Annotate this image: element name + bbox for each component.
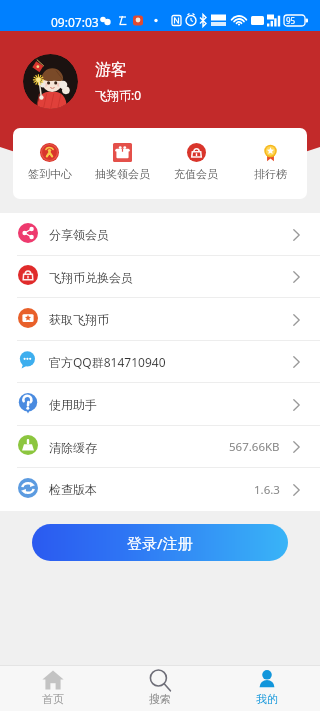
staticText: 1.6.3 [254,482,280,498]
staticText: 获取飞翔币 [49,312,109,327]
button[interactable]: 首页 [0,666,106,711]
button[interactable]: 签到中心 [13,128,86,199]
staticText: 清除缓存 [49,440,97,455]
button[interactable]: 抽奖领会员 [86,128,159,199]
button[interactable]: 飞翔币兑换会员 [0,256,320,298]
staticText: 09:07:03 [51,14,99,30]
button[interactable]: 检查版本 [0,468,320,511]
staticText: 官方QQ群814710940 [49,354,166,370]
button[interactable]: 我的 [213,666,320,711]
staticText: 游客 [95,60,127,80]
button[interactable]: 获取飞翔币 [0,298,320,341]
button[interactable]: 登录/注册 [32,524,288,561]
staticText: 抽奖领会员 [95,167,150,181]
staticText: 排行榜 [254,167,287,181]
staticText: 登录/注册 [127,533,193,553]
button[interactable]: 搜索 [106,666,213,711]
staticText: 充值会员 [174,167,218,181]
staticText: 95 [286,15,296,26]
button[interactable]: 使用助手 [0,383,320,426]
staticText: 飞翔币:0 [95,87,142,103]
button[interactable]: 清除缓存 [0,426,320,468]
staticText: 检查版本 [49,482,97,497]
staticText: 我的 [256,692,278,706]
staticText: 搜索 [149,692,171,706]
button[interactable]: 官方QQ群814710940 [0,341,320,383]
button[interactable]: 充值会员 [159,128,233,199]
staticText: 分享领会员 [49,227,109,242]
staticText: 567.66KB [229,439,280,455]
staticText: 使用助手 [49,397,97,412]
button[interactable]: 分享领会员 [0,213,320,256]
button[interactable]: 排行榜 [233,128,307,199]
staticText: 首页 [42,692,64,706]
staticText: 签到中心 [28,167,72,181]
staticText: 飞翔币兑换会员 [49,270,133,285]
